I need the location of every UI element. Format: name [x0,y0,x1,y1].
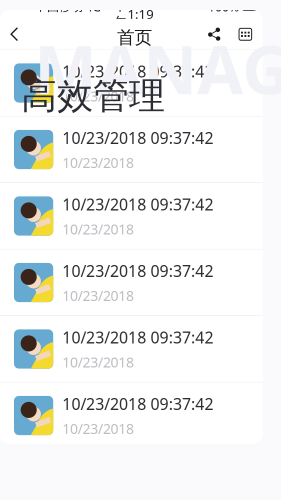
staticText: 10/23/2018 [89,300,191,326]
staticText: 10/23/2018 [89,205,191,231]
staticText: 10/23/2018 [89,395,191,421]
button[interactable]: 10/23/2018 09:37:42 [0,342,281,437]
button[interactable]: Back [0,13,42,57]
staticText: 首页 [167,24,217,55]
button[interactable]: 10/23/2018 09:37:42 [0,57,281,152]
button[interactable]: 10/23/2018 09:37:42 [0,152,281,247]
staticText: 10/23/2018 [89,110,191,136]
staticText: 10/23/2018 09:37:42 [89,262,281,293]
staticText: 10/23/2018 09:37:42 [89,72,281,103]
staticText: 1:19 [182,0,220,18]
staticText: 高效管理 [21,74,165,118]
staticText: 10/23/2018 09:37:42 [89,357,281,388]
staticText: MANAG [34,24,281,112]
button[interactable]: 10/23/2018 09:37:42 [0,247,281,342]
